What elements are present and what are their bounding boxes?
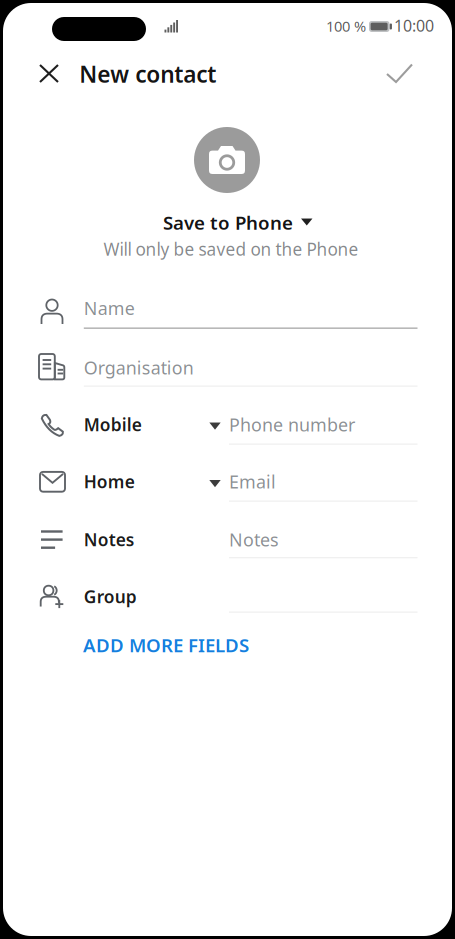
staticText: Organisation <box>84 355 194 380</box>
button[interactable]: ADD MORE FIELDS <box>0 624 334 666</box>
staticText: Mobile <box>84 413 142 436</box>
staticText: ADD MORE FIELDS <box>83 633 249 657</box>
staticText: 100 % <box>326 16 366 36</box>
button[interactable]: Save <box>375 49 423 97</box>
staticText: Phone number <box>229 412 355 437</box>
staticText: Will only be saved on the Phone <box>103 237 358 261</box>
staticText: Save to Phone <box>163 210 293 235</box>
button[interactable]: Add photo <box>194 127 260 193</box>
button[interactable]: Save to Phone <box>158 210 318 238</box>
staticText: Name <box>84 296 135 320</box>
staticText: 10:00 <box>394 15 434 36</box>
staticText: Home <box>84 470 135 493</box>
staticText: New contact <box>79 59 216 89</box>
button[interactable]: Close <box>25 49 73 97</box>
staticText: Notes <box>84 528 135 551</box>
staticText: Email <box>229 469 276 494</box>
staticText: Group <box>84 585 137 608</box>
staticText: Notes <box>229 527 279 552</box>
